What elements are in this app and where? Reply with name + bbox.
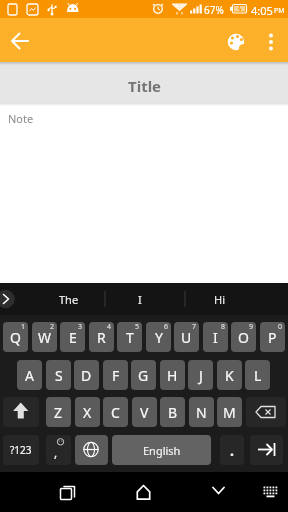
button[interactable]: G — [131, 360, 156, 390]
button[interactable]: S — [46, 360, 71, 390]
button[interactable] — [75, 435, 108, 465]
button[interactable]: N — [189, 397, 214, 427]
staticText: M — [223, 403, 236, 422]
staticText: G — [138, 366, 149, 385]
staticText: A — [25, 366, 34, 385]
button[interactable]: J — [188, 360, 213, 390]
staticText: , — [54, 444, 58, 460]
staticText: 5 — [135, 322, 140, 332]
button[interactable] — [122, 474, 164, 510]
button[interactable]: C — [103, 397, 128, 427]
button[interactable]: O — [231, 322, 256, 352]
staticText: B — [168, 403, 178, 422]
button[interactable]: P — [260, 322, 285, 352]
staticText: J — [199, 366, 203, 385]
staticText: T — [126, 328, 134, 347]
button[interactable]: ?123 — [3, 435, 39, 465]
button[interactable]: T — [117, 322, 142, 352]
staticText: N — [196, 403, 207, 422]
staticText: R — [97, 328, 106, 347]
staticText: F — [112, 366, 120, 385]
button[interactable]: D — [74, 360, 99, 390]
staticText: 2 — [50, 322, 55, 332]
button[interactable]: . — [220, 435, 244, 465]
staticText: Q — [10, 328, 21, 347]
staticText: U — [181, 328, 192, 347]
staticText: ?123 — [10, 443, 32, 457]
staticText: 4 — [107, 322, 112, 332]
staticText: 9 — [249, 322, 254, 332]
staticText: Note — [8, 111, 34, 126]
staticText: Title — [128, 76, 162, 96]
staticText: P — [268, 328, 277, 347]
button[interactable] — [246, 397, 286, 427]
staticText: 4:05 — [251, 3, 273, 18]
button[interactable]: R — [89, 322, 114, 352]
staticText: L — [254, 366, 262, 385]
staticText: Hi — [214, 292, 225, 307]
staticText: 67% — [204, 3, 224, 17]
button[interactable] — [258, 28, 284, 56]
button[interactable]: H — [160, 360, 185, 390]
button[interactable]: A — [17, 360, 42, 390]
button[interactable] — [198, 474, 240, 510]
button[interactable] — [252, 474, 288, 510]
button[interactable]: X — [75, 397, 100, 427]
button[interactable]: Z — [46, 397, 71, 427]
button[interactable]: K — [217, 360, 242, 390]
staticText: C — [111, 403, 120, 422]
staticText: W — [38, 328, 52, 347]
button[interactable]: B — [160, 397, 185, 427]
staticText: I — [138, 292, 142, 307]
button[interactable] — [46, 474, 88, 510]
staticText: D — [81, 366, 92, 385]
staticText: I — [213, 328, 218, 347]
staticText: H — [167, 366, 178, 385]
staticText: Z — [54, 403, 63, 422]
button[interactable] — [0, 62, 288, 103]
button[interactable]: English — [112, 435, 211, 465]
button[interactable]: U — [174, 322, 199, 352]
button[interactable]: I — [101, 283, 179, 315]
staticText: 7 — [192, 322, 197, 332]
button[interactable] — [6, 27, 34, 55]
button[interactable]: M — [217, 397, 242, 427]
button[interactable]: E — [60, 322, 85, 352]
staticText: O — [238, 328, 249, 347]
button[interactable]: The — [36, 283, 101, 315]
button[interactable]: Q — [3, 322, 28, 352]
button[interactable]: F — [103, 360, 128, 390]
button[interactable] — [222, 28, 250, 56]
button[interactable]: , — [46, 435, 71, 465]
staticText: K — [225, 366, 234, 385]
button[interactable]: Y — [146, 322, 171, 352]
button[interactable]: Hi — [186, 283, 252, 315]
staticText: PM — [274, 6, 285, 16]
staticText: The — [59, 292, 79, 307]
staticText: 3 — [78, 322, 83, 332]
staticText: English — [143, 443, 181, 458]
button[interactable]: V — [132, 397, 157, 427]
button[interactable]: W — [32, 322, 57, 352]
staticText: V — [140, 403, 149, 422]
staticText: 1 — [21, 322, 26, 332]
staticText: 8 — [221, 322, 226, 332]
button[interactable]: I — [203, 322, 228, 352]
staticText: E — [69, 328, 77, 347]
button[interactable] — [3, 397, 39, 427]
staticText: 0 — [278, 322, 283, 332]
staticText: 6 — [164, 322, 169, 332]
staticText: S — [55, 366, 63, 385]
staticText: Y — [155, 328, 163, 347]
staticText: X — [83, 403, 92, 422]
staticText: . — [230, 441, 234, 460]
button[interactable]: L — [245, 360, 270, 390]
button[interactable] — [250, 435, 283, 465]
